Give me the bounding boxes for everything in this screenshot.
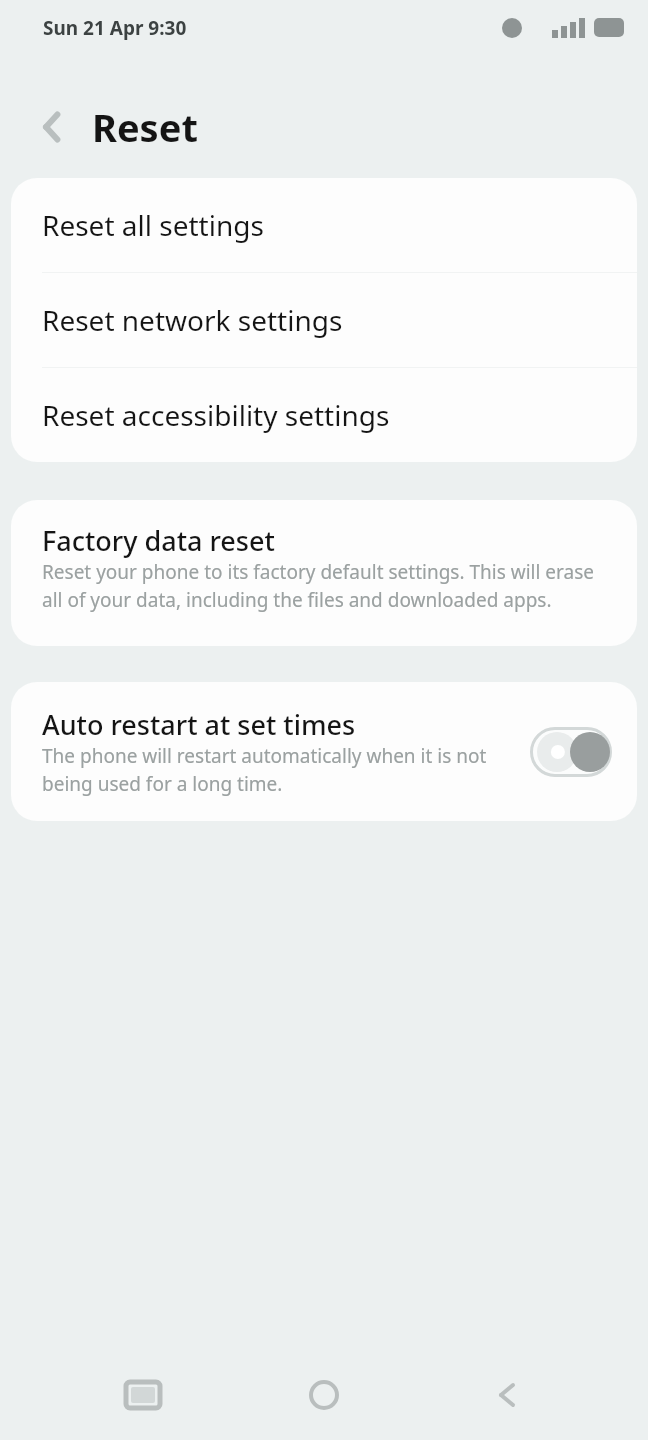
button[interactable]: Reset network settings [11,273,637,367]
button[interactable]: Back [475,1363,539,1427]
staticText: Sun 21 Apr 9:30 [43,15,187,41]
button[interactable]: Reset accessibility settings [11,368,637,462]
button[interactable]: Auto restart at set times [11,682,637,821]
button[interactable]: Back [24,99,80,155]
staticText: Reset accessibility settings [42,396,390,434]
button[interactable]: Auto restart toggle [530,727,612,777]
button[interactable]: Home [292,1363,356,1427]
staticText: Reset all settings [42,206,264,244]
button[interactable]: Recent apps [111,1363,175,1427]
button[interactable]: Reset all settings [11,178,637,272]
staticText: Auto restart at set times [42,706,356,743]
staticText: Reset your phone to its factory default … [42,559,594,613]
staticText: Factory data reset [42,522,275,559]
staticText: The phone will restart automatically whe… [42,743,487,797]
staticText: Reset [92,101,198,153]
button[interactable]: Factory data reset [11,500,637,646]
staticText: Reset network settings [42,301,343,339]
